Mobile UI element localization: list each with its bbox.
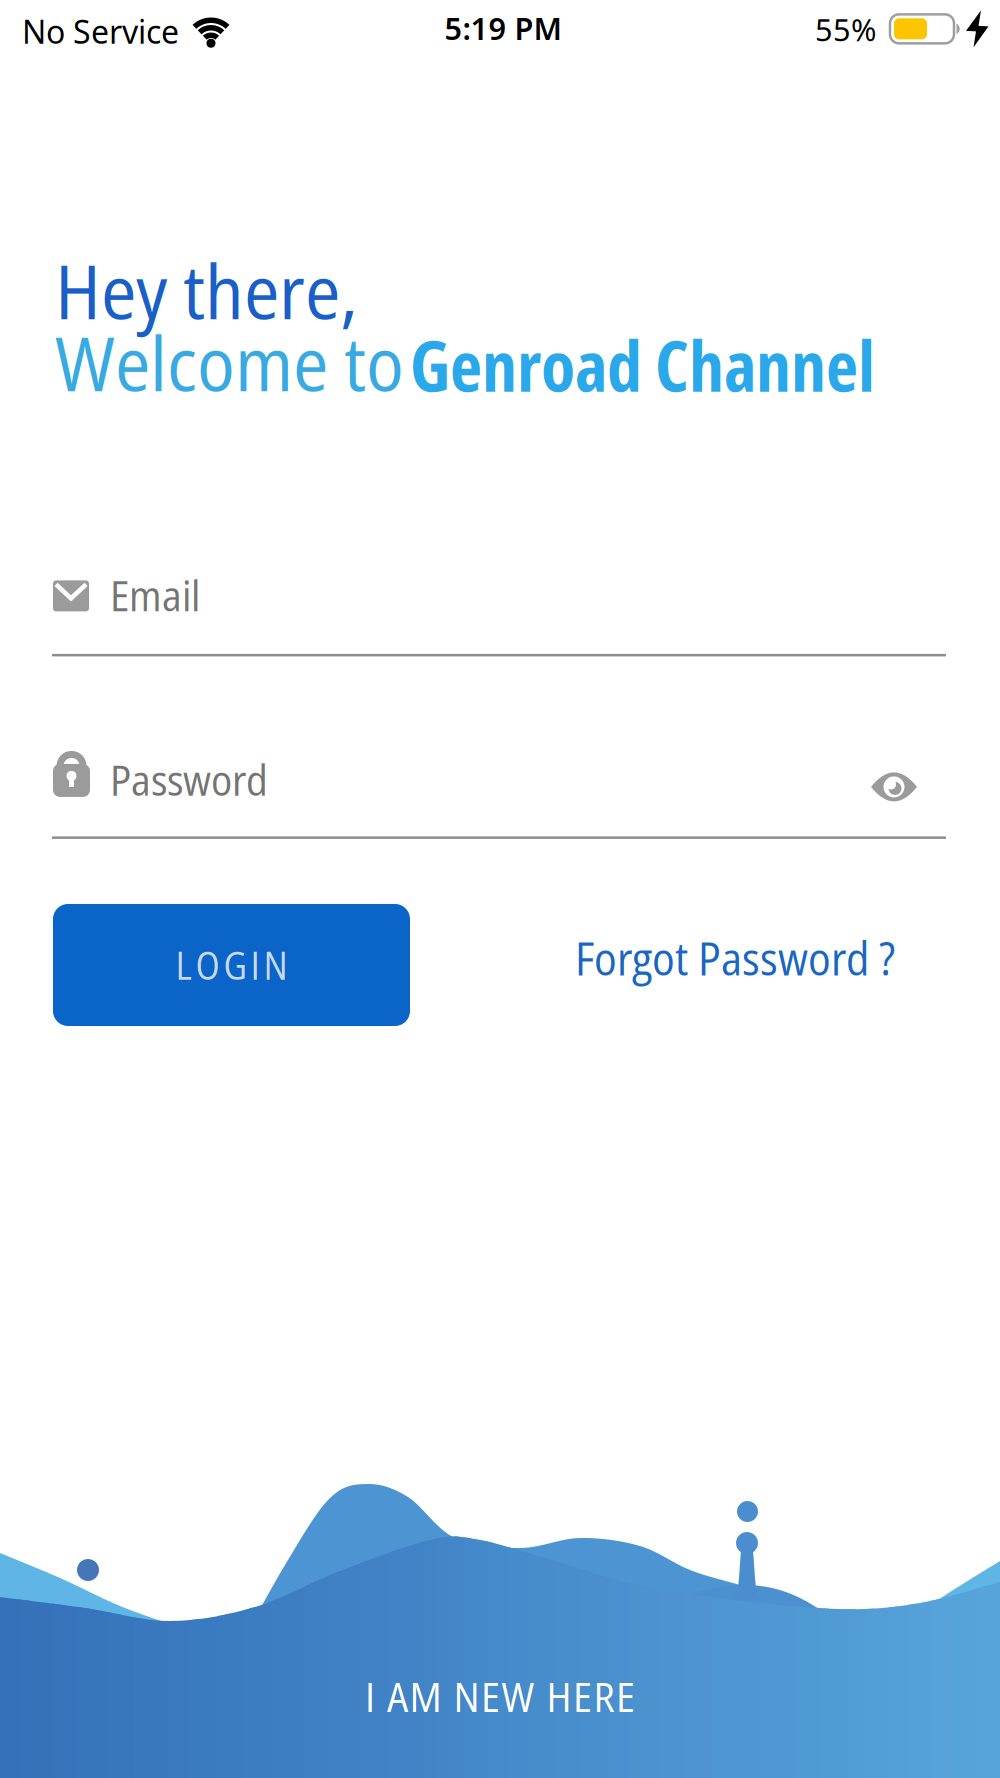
staticText: I AM NEW HERE [365,1668,635,1724]
staticText: Forgot Password ? [575,927,895,989]
button[interactable]: I AM NEW HERE [365,1668,635,1724]
staticText: No Service [22,10,179,52]
staticText: 55% [815,9,876,50]
button[interactable]: Forgot Password ? [575,927,895,989]
staticText: Password [110,751,268,808]
staticText: Hey there, [55,239,358,341]
staticText: LOGIN [175,939,287,991]
staticText: Genroad Channel [410,317,875,412]
button[interactable]: Password [52,717,946,818]
staticText: 5:19 PM [444,8,561,48]
button[interactable]: Email [52,542,946,638]
button[interactable]: LOGIN [53,904,410,1026]
staticText: Welcome to [55,311,404,413]
staticText: Email [110,566,200,624]
